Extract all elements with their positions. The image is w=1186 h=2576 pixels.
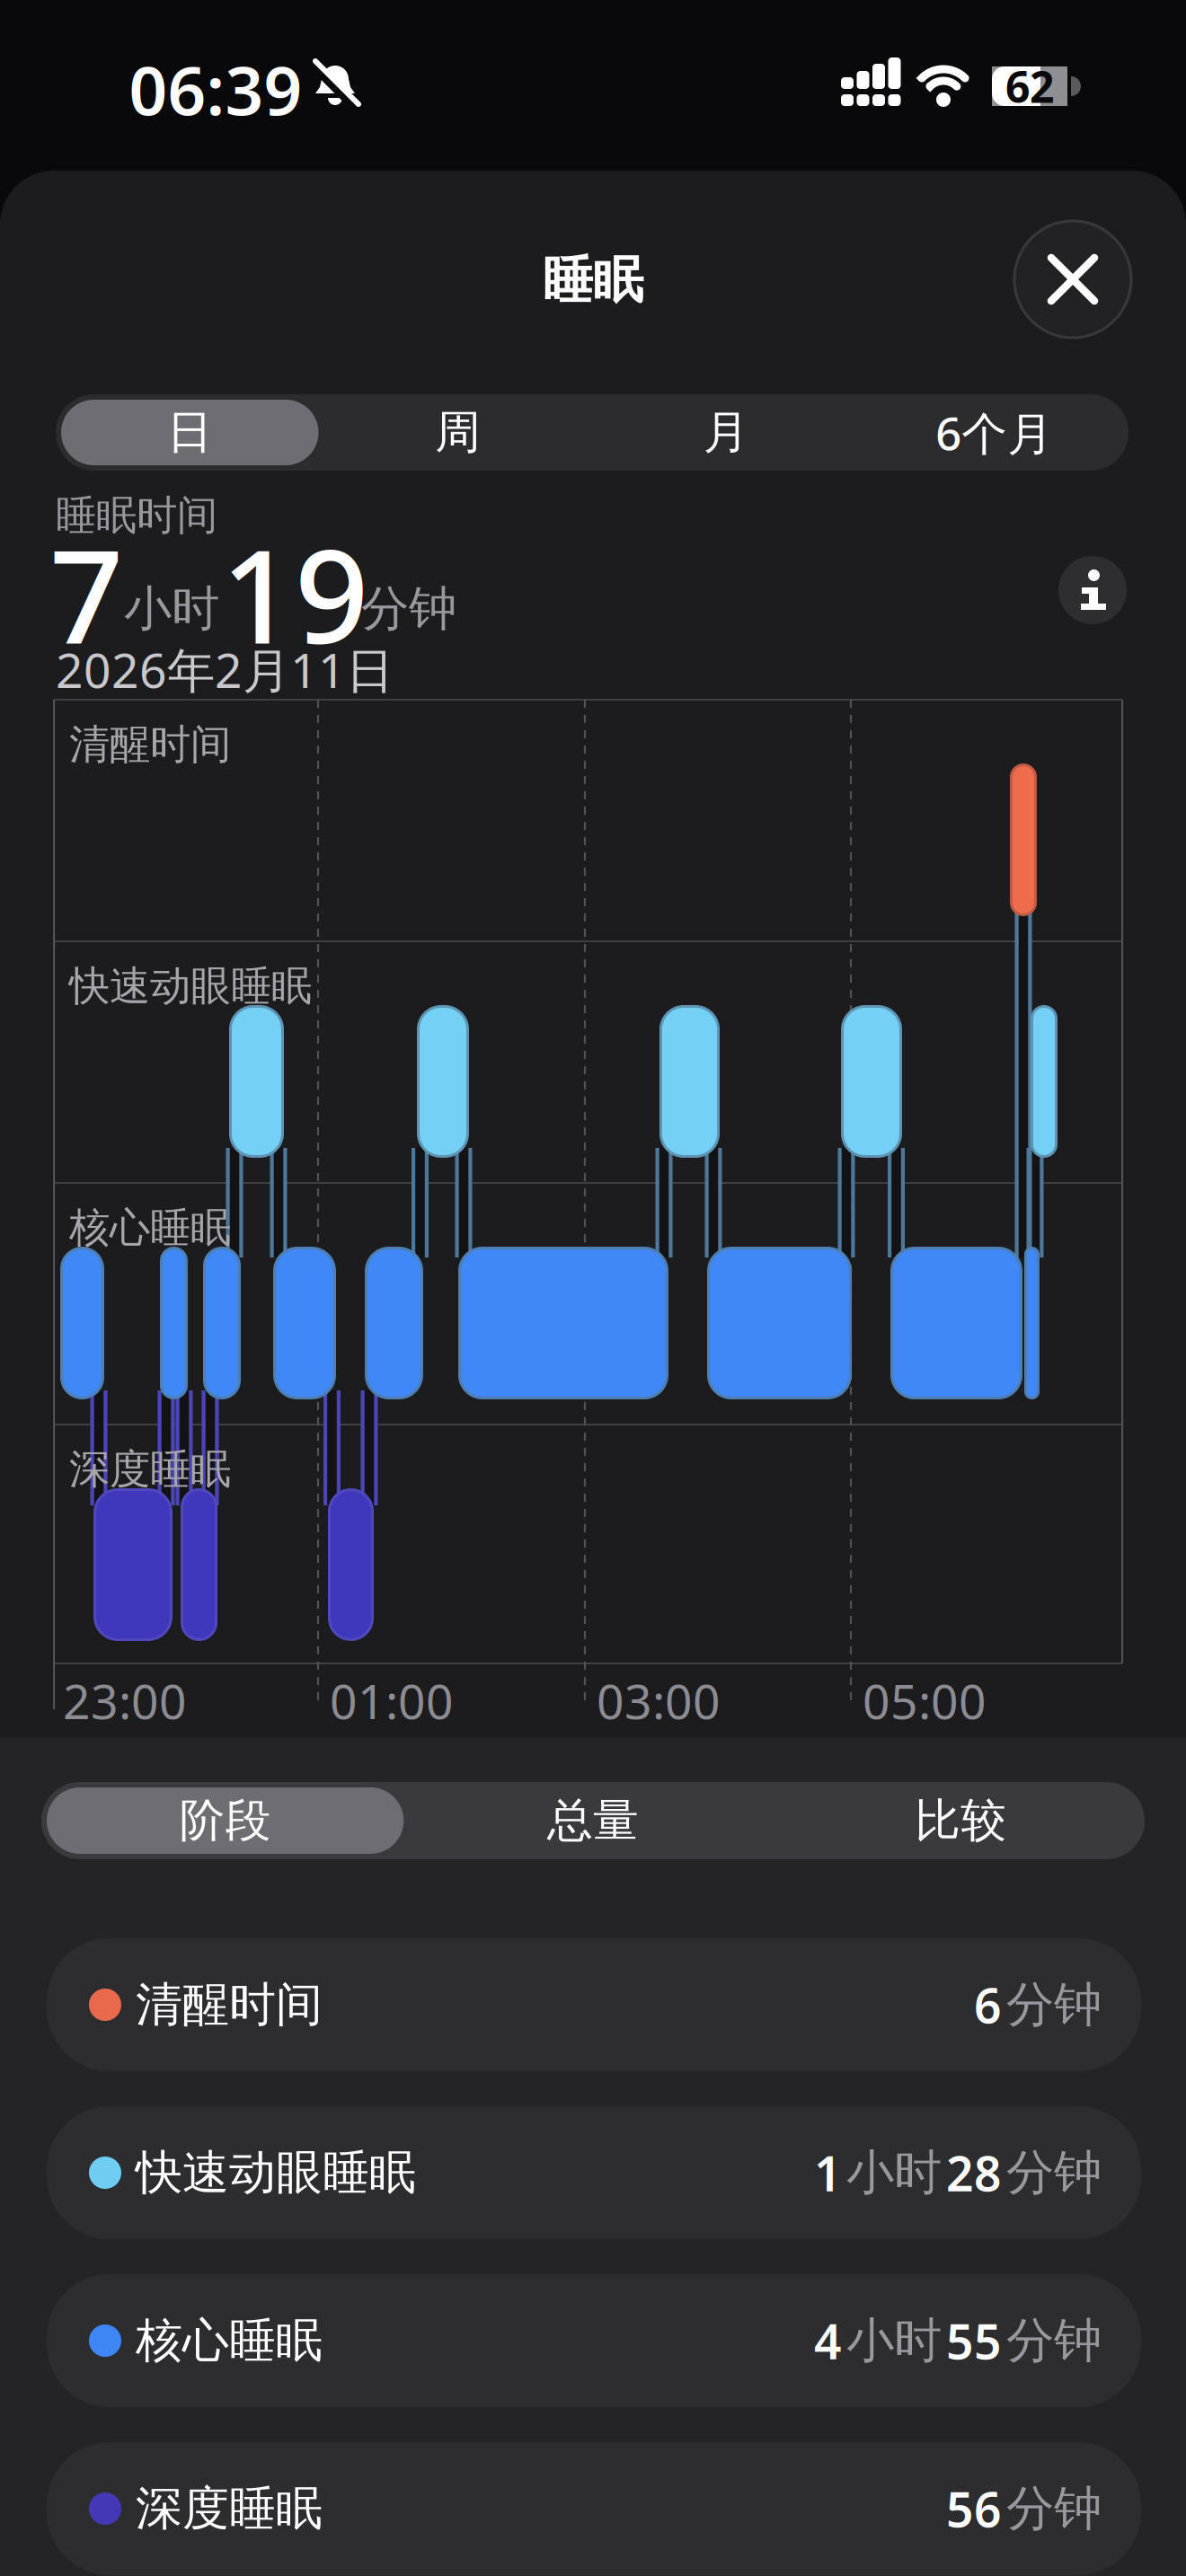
staticText: 比较 xyxy=(915,1793,1006,1849)
staticText: 62 xyxy=(1005,58,1054,115)
staticText: 周 xyxy=(435,405,481,460)
staticText: 睡眠时间 xyxy=(56,490,217,540)
staticText: 核心睡眠 xyxy=(136,2312,323,2369)
staticText: 2026年2月11日 xyxy=(56,638,394,701)
staticText: 7 xyxy=(49,507,123,679)
button[interactable]: 快速动眼睡眠 xyxy=(47,2106,1141,2239)
staticText: 日 xyxy=(167,405,213,460)
button[interactable]: 日 xyxy=(56,394,324,471)
button[interactable]: 清醒时间 xyxy=(47,1938,1141,2071)
staticText: 睡眠 xyxy=(543,249,643,311)
staticText: 分钟 xyxy=(1006,2479,1102,2538)
staticText: 小时 xyxy=(846,2311,942,2370)
staticText: 1 xyxy=(814,2141,842,2205)
button[interactable]: 总量 xyxy=(409,1782,777,1859)
button[interactable]: 6个月 xyxy=(860,394,1128,471)
staticText: 清醒时间 xyxy=(69,719,231,769)
staticText: 01:00 xyxy=(330,1669,454,1732)
staticText: 55 xyxy=(946,2309,1002,2372)
staticText: 总量 xyxy=(547,1793,639,1849)
staticText: 6 xyxy=(974,1973,1002,2037)
staticText: 28 xyxy=(946,2141,1002,2205)
staticText: 6个月 xyxy=(936,402,1053,463)
staticText: 核心睡眠 xyxy=(69,1203,231,1253)
staticText: 05:00 xyxy=(863,1669,987,1732)
staticText: 深度睡眠 xyxy=(136,2480,323,2537)
staticText: 小时 xyxy=(846,2143,942,2202)
staticText: 03:00 xyxy=(597,1669,721,1732)
staticText: 分钟 xyxy=(1006,2311,1102,2370)
staticText: 19 xyxy=(221,507,368,679)
staticText: 4 xyxy=(814,2309,842,2372)
button[interactable]: 月 xyxy=(592,394,860,471)
button[interactable]: 阶段 xyxy=(41,1782,409,1859)
staticText: 分钟 xyxy=(1006,2143,1102,2202)
staticText: 月 xyxy=(703,405,749,460)
staticText: 快速动眼睡眠 xyxy=(136,2144,416,2201)
button[interactable]: 比较 xyxy=(777,1782,1145,1859)
staticText: 56 xyxy=(946,2477,1002,2540)
staticText: 分钟 xyxy=(361,579,456,638)
button[interactable]: 周 xyxy=(324,394,592,471)
staticText: 清醒时间 xyxy=(136,1976,323,2033)
staticText: 23:00 xyxy=(63,1669,187,1732)
button[interactable]: 关闭 xyxy=(1014,221,1131,338)
staticText: 分钟 xyxy=(1006,1975,1102,2034)
button[interactable]: 深度睡眠 xyxy=(47,2442,1141,2575)
button[interactable]: 核心睡眠 xyxy=(47,2274,1141,2407)
staticText: 阶段 xyxy=(179,1793,271,1849)
staticText: 快速动眼睡眠 xyxy=(69,961,312,1011)
staticText: 小时 xyxy=(124,579,219,638)
button[interactable]: 关于睡眠时间 xyxy=(1058,556,1127,624)
staticText: 深度睡眠 xyxy=(69,1444,231,1494)
staticText: 06:39 xyxy=(129,44,302,133)
